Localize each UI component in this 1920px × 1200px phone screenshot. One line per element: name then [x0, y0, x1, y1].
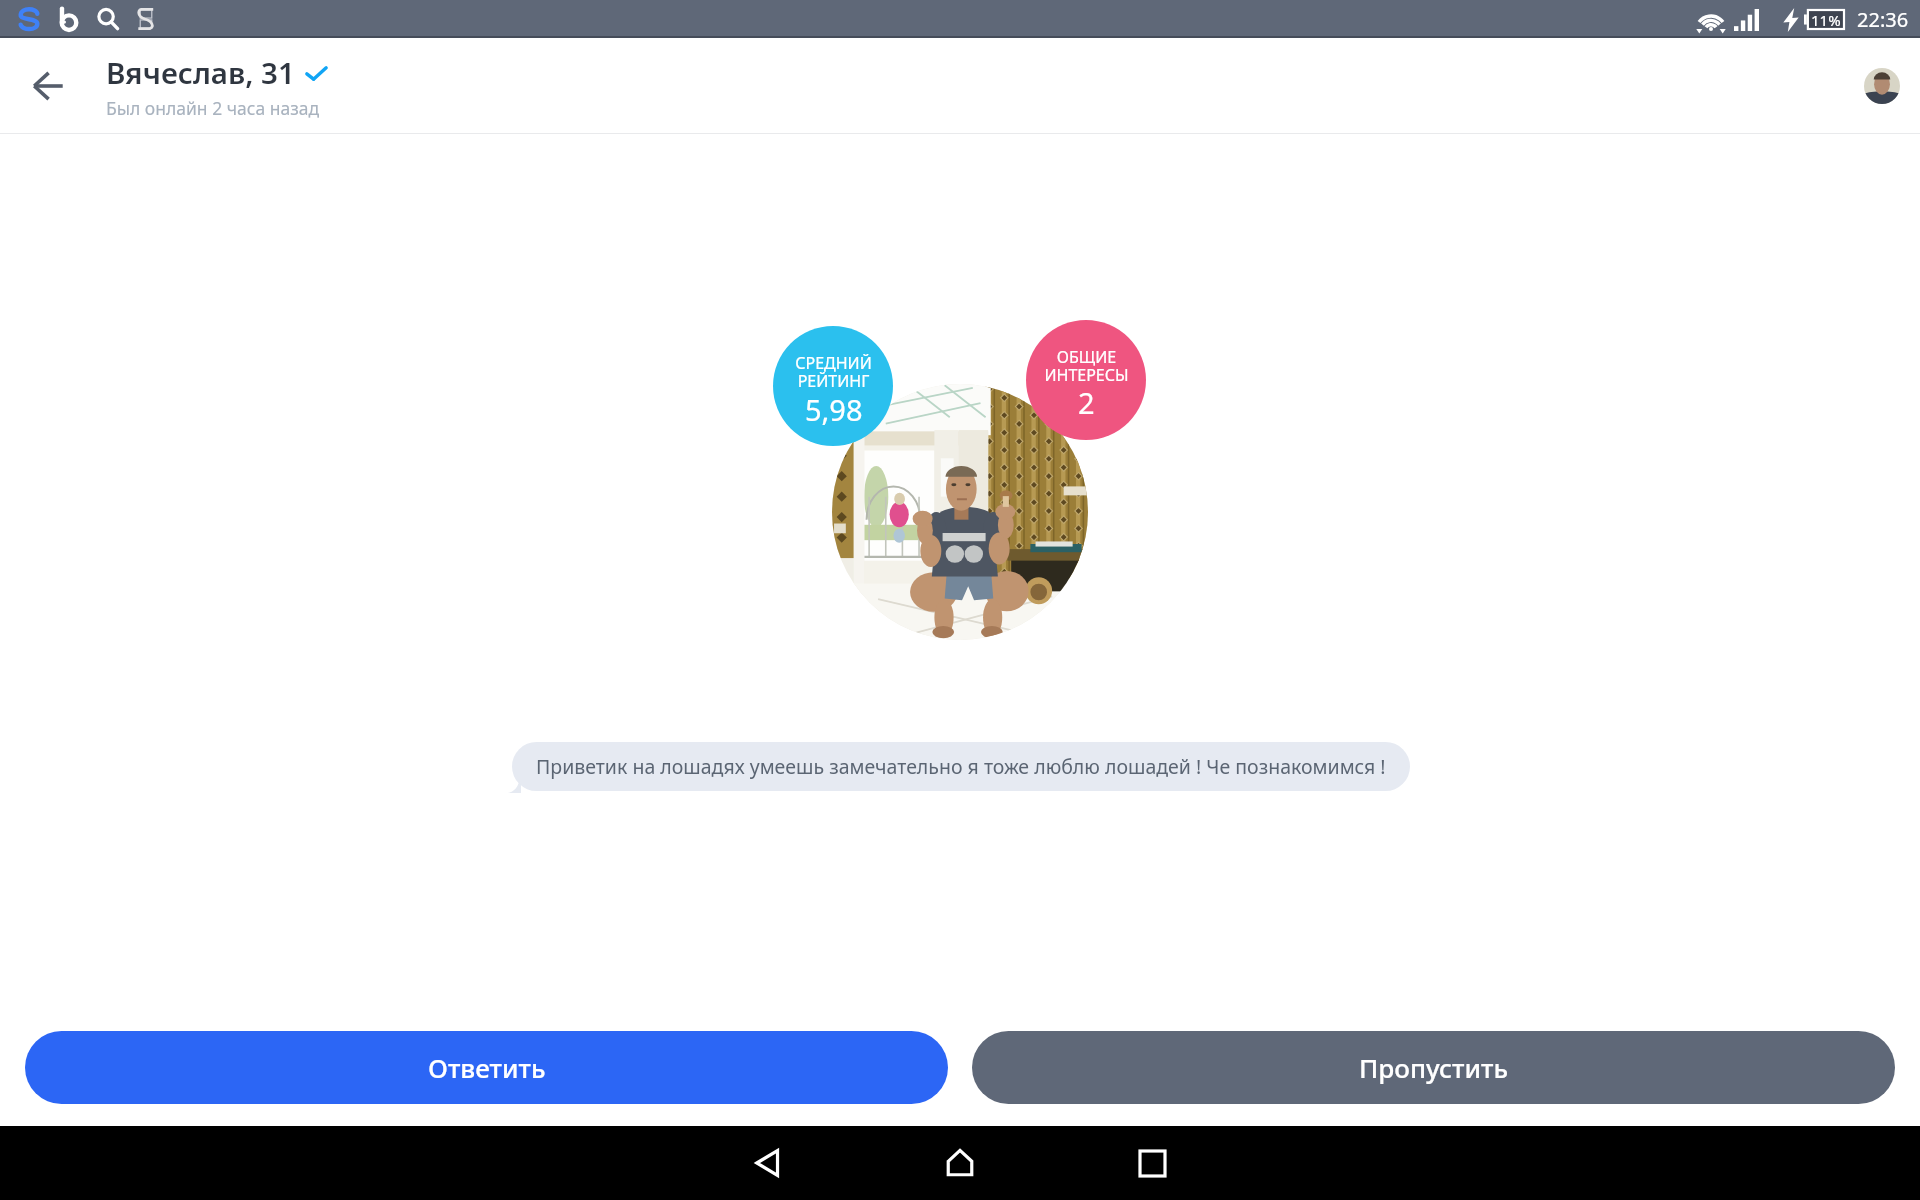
button[interactable]: ОБЩИЕ ИНТЕРЕСЫ: [1026, 320, 1146, 440]
button[interactable]: Ответить: [25, 1031, 948, 1104]
button[interactable]: Home: [932, 1135, 988, 1191]
staticText: Пропустить: [1359, 1050, 1508, 1085]
staticText: 22:36: [1857, 6, 1909, 33]
button[interactable]: Back: [740, 1135, 796, 1191]
staticText: 11%: [1811, 10, 1841, 30]
staticText: 2: [1078, 383, 1095, 422]
staticText: СРЕДНИЙ РЕЙТИНГ: [795, 352, 872, 392]
button[interactable]: Back: [0, 38, 96, 134]
staticText: Вячеслав, 31: [106, 52, 295, 92]
button[interactable]: Пропустить: [972, 1031, 1895, 1104]
staticText: Был онлайн 2 часа назад: [106, 96, 320, 120]
button[interactable]: Приветик на лошадях умеешь замечательно …: [512, 742, 1410, 791]
staticText: Ответить: [428, 1050, 546, 1085]
staticText: Приветик на лошадях умеешь замечательно …: [536, 753, 1386, 780]
button[interactable]: СРЕДНИЙ РЕЙТИНГ: [773, 326, 893, 446]
button[interactable]: Recent apps: [1124, 1135, 1180, 1191]
staticText: 5,98: [805, 390, 863, 429]
staticText: ОБЩИЕ ИНТЕРЕСЫ: [1044, 346, 1129, 386]
button[interactable]: Profile photo of Вячеслав: [832, 384, 1088, 640]
button[interactable]: Profile photo: [1864, 68, 1900, 104]
